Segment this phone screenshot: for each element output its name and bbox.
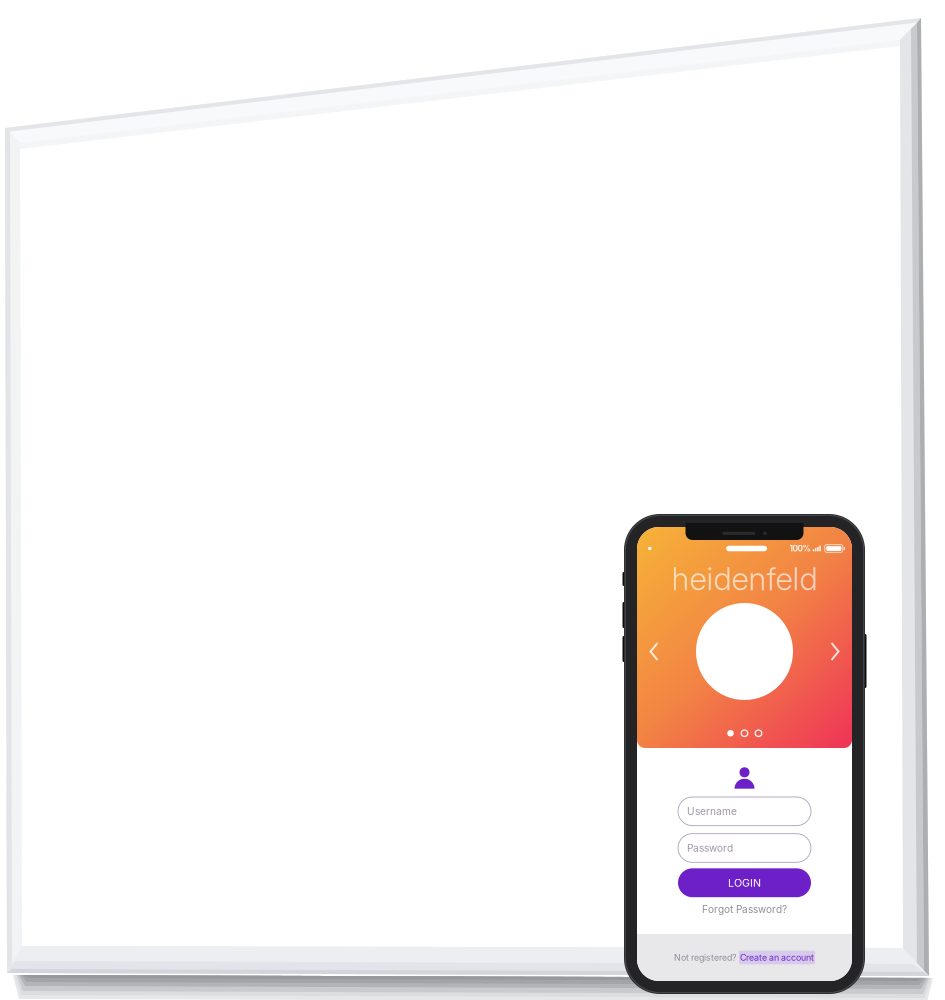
staticText: heidenfeld [671,560,817,598]
button[interactable]: Forgot Password? [702,897,787,921]
button[interactable]: Previous product [637,624,671,679]
button[interactable]: Next product [818,624,852,679]
staticText: Not registered? [674,952,736,963]
button[interactable]: Username [678,797,811,826]
button[interactable]: Page 1 [727,730,734,736]
staticText: LOGIN [728,876,761,889]
staticText: Create an account [740,952,814,963]
staticText: Forgot Password? [702,903,787,915]
button[interactable]: Page 2 [741,730,748,736]
button[interactable]: Page 3 [755,730,762,736]
button[interactable]: LOGIN [678,868,811,897]
staticText: 100% [790,543,811,553]
button[interactable]: Password [678,834,811,862]
button[interactable]: Not registered? [637,934,852,981]
staticText: Username [687,805,737,817]
staticText: Password [687,842,733,854]
